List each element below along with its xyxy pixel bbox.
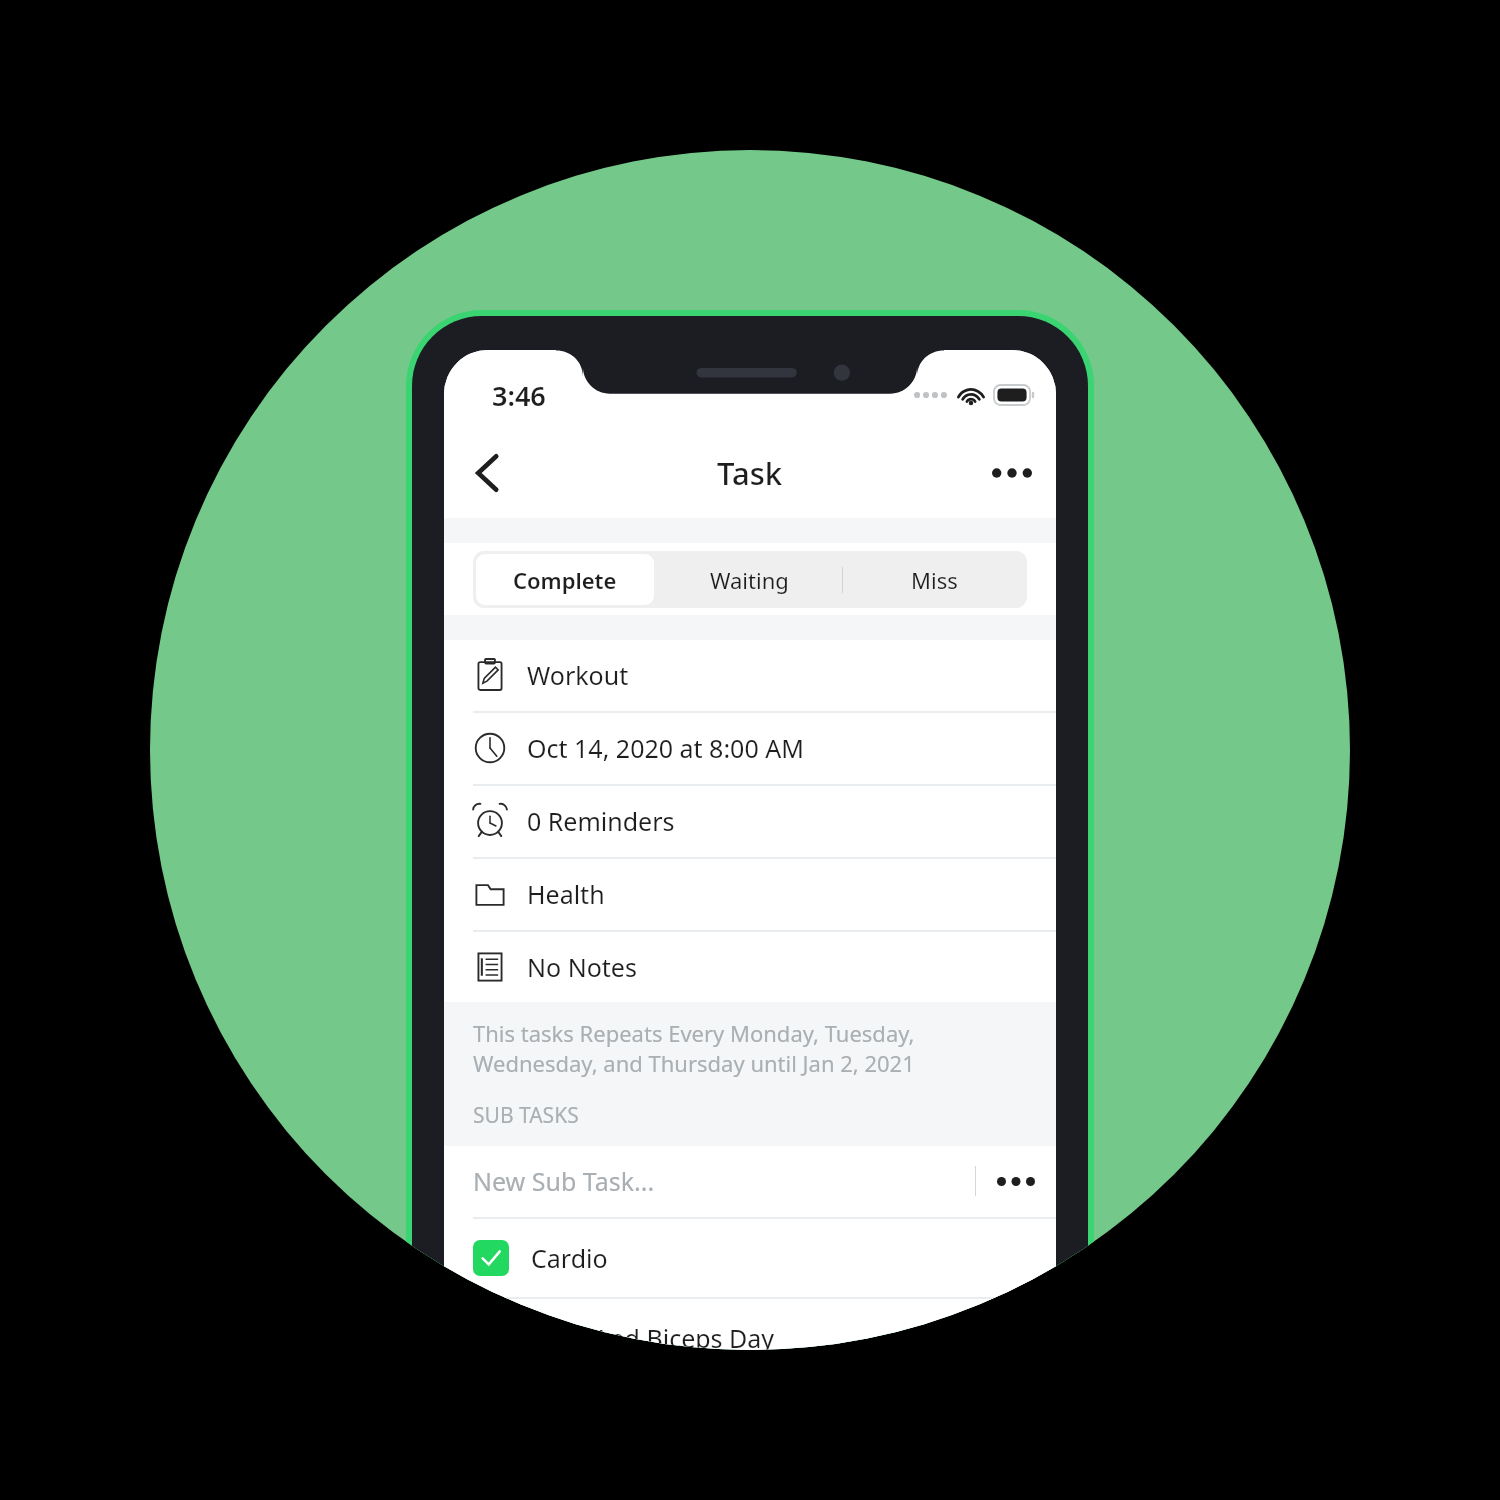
button[interactable]: Oct 14, 2020 at 8:00 AM [444, 713, 1056, 783]
staticText: Health [527, 877, 605, 911]
button[interactable]: No Notes [444, 932, 1056, 1002]
staticText: Waiting [710, 565, 789, 595]
button[interactable]: Waiting [657, 551, 842, 608]
button[interactable]: More options [968, 428, 1056, 518]
staticText: Back And Biceps Day [531, 1321, 775, 1350]
staticText: Oct 14, 2020 at 8:00 AM [527, 731, 804, 765]
button[interactable]: 0 Reminders [444, 786, 1056, 856]
staticText: Complete [513, 565, 617, 595]
button[interactable]: New Sub Task... [444, 1146, 1056, 1216]
staticText: No Notes [527, 950, 637, 984]
button[interactable]: Sub task options [976, 1146, 1056, 1216]
button[interactable]: Miss [842, 551, 1027, 608]
button[interactable]: Workout [444, 640, 1056, 710]
staticText: New Sub Task... [473, 1164, 975, 1198]
staticText: Cardio [531, 1241, 608, 1275]
button[interactable]: Back And Biceps Day [444, 1299, 1056, 1350]
staticText: Task [717, 452, 783, 494]
button[interactable]: Complete [476, 554, 654, 605]
staticText: Miss [911, 565, 958, 595]
button[interactable]: Cardio [444, 1219, 1056, 1296]
staticText: 3:46 [492, 377, 546, 414]
staticText: Workout [527, 658, 629, 692]
button[interactable]: Health [444, 859, 1056, 929]
staticText: 0 Reminders [527, 804, 675, 838]
button[interactable]: Back [444, 428, 530, 518]
staticText: SUB TASKS [473, 1101, 579, 1130]
staticText: This tasks Repeats Every Monday, Tuesday… [473, 1018, 1020, 1079]
